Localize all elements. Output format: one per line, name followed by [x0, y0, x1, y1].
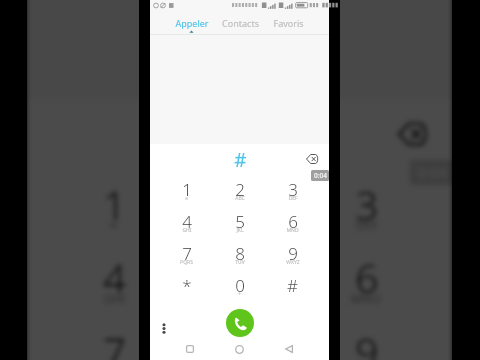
staticText: WXYZ	[286, 259, 300, 266]
staticText: 4	[182, 210, 192, 233]
button[interactable]: Appeler	[167, 10, 216, 35]
staticText: #	[287, 274, 298, 297]
staticText: JKL	[231, 291, 250, 307]
button[interactable]: Back	[264, 338, 314, 360]
staticText: ∞	[107, 217, 119, 231]
staticText: JKL	[236, 227, 244, 234]
staticText: MNO	[286, 227, 299, 234]
button[interactable]: 3	[303, 176, 429, 250]
staticText: *	[182, 274, 192, 297]
button[interactable]: Contacts	[216, 10, 264, 35]
button[interactable]: 3	[266, 177, 319, 209]
button[interactable]: Backspace	[386, 109, 438, 159]
staticText: 7	[182, 242, 192, 265]
button[interactable]: 8	[176, 323, 302, 360]
button[interactable]: 8	[213, 241, 266, 273]
staticText: 3	[288, 178, 298, 201]
staticText: GHI	[182, 227, 192, 234]
staticText: 1	[103, 178, 126, 231]
staticText: 6	[288, 210, 298, 233]
staticText: #	[226, 106, 257, 166]
staticText: 8	[229, 326, 253, 360]
button[interactable]: 4	[160, 209, 213, 241]
button[interactable]: 9	[266, 241, 319, 273]
button[interactable]: 2	[213, 177, 266, 209]
button[interactable]: 5	[176, 250, 302, 323]
staticText: ∞	[184, 195, 189, 201]
staticText: 2	[235, 178, 245, 201]
button[interactable]: 1	[50, 176, 176, 250]
staticText: Favoris	[273, 17, 304, 29]
staticText: GHI	[103, 291, 126, 307]
button[interactable]: #	[266, 273, 319, 305]
button[interactable]: Call	[226, 309, 254, 337]
button[interactable]: Backspace	[301, 148, 323, 170]
staticText: 9	[288, 242, 298, 265]
button[interactable]: 1	[160, 177, 213, 209]
button[interactable]: 7	[50, 323, 176, 360]
staticText: 0:04	[314, 171, 327, 180]
staticText: 0	[235, 274, 245, 297]
staticText: ABC	[229, 217, 253, 233]
button[interactable]: 9	[303, 323, 429, 360]
button[interactable]: More options	[155, 320, 172, 337]
button[interactable]: Home	[214, 338, 264, 360]
staticText: TUV	[235, 259, 245, 266]
button[interactable]: 2	[176, 176, 302, 250]
staticText: PQRS	[180, 259, 193, 266]
button[interactable]: 6	[303, 250, 429, 323]
staticText: +	[238, 291, 241, 298]
staticText: DEF	[355, 217, 379, 233]
button[interactable]: Favoris	[264, 10, 312, 35]
button[interactable]: #	[210, 106, 272, 166]
staticText: 9	[355, 326, 379, 360]
button[interactable]: #	[227, 147, 253, 173]
staticText: 6	[355, 252, 379, 305]
staticText: 5	[229, 252, 253, 305]
staticText: 5	[235, 210, 245, 233]
staticText: 1	[182, 178, 192, 201]
button[interactable]: *	[160, 273, 213, 305]
staticText: 4	[103, 252, 126, 305]
staticText: 7	[103, 326, 126, 360]
staticText: DEF	[288, 195, 298, 202]
button[interactable]: 4	[50, 250, 176, 323]
staticText: 8	[235, 242, 245, 265]
staticText: 2	[229, 178, 253, 231]
staticText: #	[234, 147, 247, 173]
staticText: 3	[355, 178, 379, 231]
staticText: ABC	[235, 195, 245, 202]
button[interactable]: 6	[266, 209, 319, 241]
button[interactable]: Recents	[165, 338, 214, 360]
staticText: Contacts	[222, 17, 259, 29]
staticText: Appeler	[175, 17, 209, 29]
button[interactable]: 5	[213, 209, 266, 241]
button[interactable]: 0	[213, 273, 266, 305]
button[interactable]: 7	[160, 241, 213, 273]
staticText: MNO	[350, 291, 381, 307]
